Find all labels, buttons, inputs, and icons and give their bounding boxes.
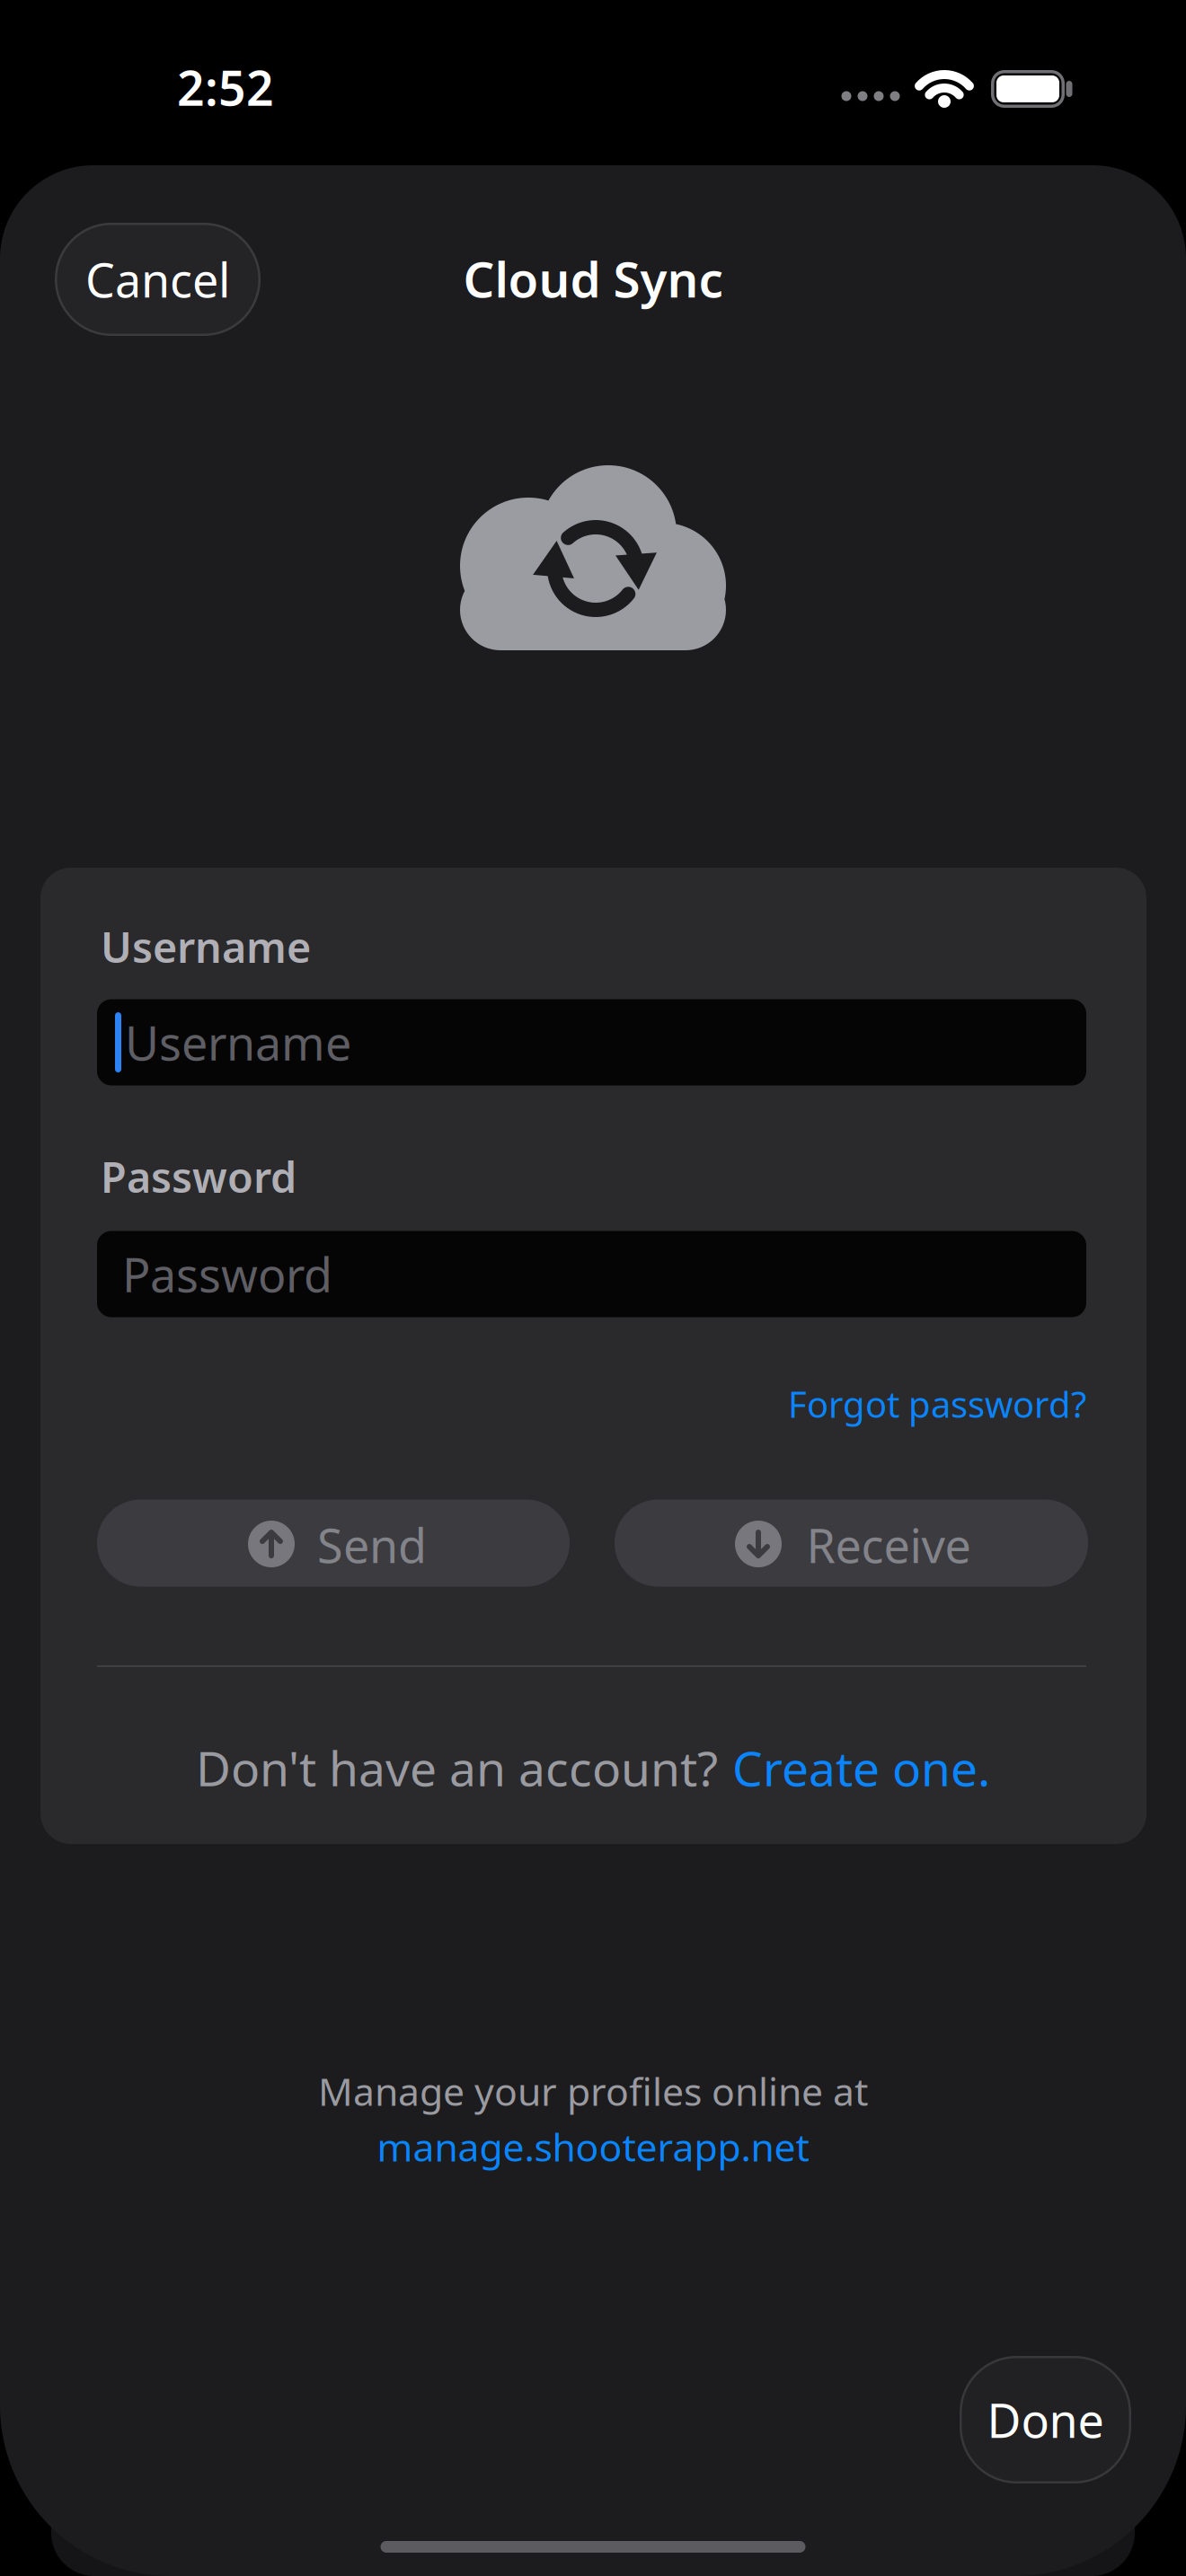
staticText: Forgot password? [788,1380,1086,1428]
button[interactable]: Password [97,1231,1086,1317]
staticText: Username [125,1011,351,1073]
staticText: 2:52 [177,55,274,119]
staticText: Don't have an account? [196,1736,718,1799]
button[interactable]: Forgot password? [788,1380,1086,1428]
button[interactable]: Username [97,999,1086,1085]
button[interactable]: manage.shooterapp.net [377,2121,809,2172]
button[interactable]: Receive [615,1500,1088,1587]
button[interactable]: Cancel [55,223,261,336]
staticText: Password [122,1243,332,1305]
staticText: manage.shooterapp.net [377,2121,809,2172]
staticText: Password [101,1149,296,1204]
staticText: Create one. [732,1736,990,1799]
button[interactable]: Create one. [732,1736,990,1799]
staticText: Manage your profiles online at [318,2066,868,2116]
staticText: Done [987,2389,1104,2451]
button[interactable]: Send [97,1500,570,1587]
staticText: Send [317,1514,427,1576]
button[interactable]: Done [960,2356,1131,2483]
staticText: Cloud Sync [463,246,723,311]
staticText: Username [101,919,311,975]
staticText: Receive [806,1514,971,1576]
staticText: Cancel [85,248,230,310]
